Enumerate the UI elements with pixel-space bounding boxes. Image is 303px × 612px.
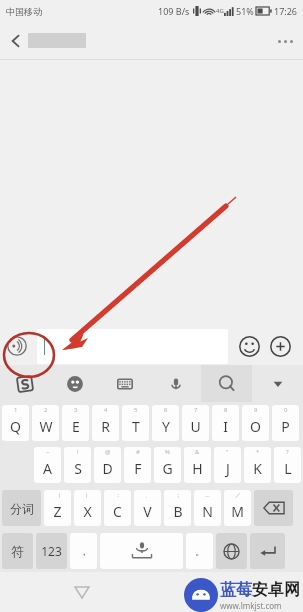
staticText: !: [77, 448, 79, 456]
button[interactable]: ，: [70, 533, 97, 569]
button[interactable]: %: [154, 447, 181, 483]
button[interactable]: [254, 490, 293, 526]
button[interactable]: [37, 329, 228, 364]
staticText: H: [192, 459, 203, 478]
button[interactable]: Emoji: [236, 333, 262, 359]
button[interactable]: 1: [2, 405, 29, 441]
staticText: F: [134, 459, 142, 478]
button[interactable]: Back: [0, 25, 32, 57]
staticText: 123: [41, 543, 62, 559]
staticText: K: [253, 459, 262, 478]
staticText: 分词: [10, 501, 34, 516]
staticText: 符: [11, 543, 24, 559]
staticText: W: [39, 417, 53, 436]
staticText: S: [74, 459, 82, 478]
button[interactable]: Hide keyboard: [70, 580, 94, 604]
staticText: ：: [115, 491, 121, 499]
button[interactable]: ／: [224, 490, 251, 526]
button[interactable]: *: [244, 447, 271, 483]
staticText: Y: [162, 417, 170, 436]
staticText: 中国移动: [6, 6, 42, 17]
button[interactable]: !: [64, 447, 91, 483]
button[interactable]: 7: [182, 405, 209, 441]
button[interactable]: 分词: [2, 490, 41, 526]
staticText: A: [43, 459, 52, 478]
button[interactable]: Sogou input: [0, 365, 50, 402]
staticText: #: [136, 448, 140, 456]
button[interactable]: Voice message: [4, 333, 30, 359]
staticText: R: [101, 417, 110, 436]
staticText: …: [205, 491, 210, 499]
staticText: 1: [14, 406, 18, 414]
button[interactable]: Search: [201, 365, 252, 402]
staticText: 4: [104, 406, 108, 414]
button[interactable]: 123: [36, 533, 67, 569]
button[interactable]: ；: [164, 490, 191, 526]
staticText: （: [55, 491, 61, 499]
button[interactable]: （: [44, 490, 71, 526]
button[interactable]: Voice input: [150, 365, 201, 402]
button[interactable]: 0: [272, 405, 299, 441]
button[interactable]: 8: [212, 405, 239, 441]
staticText: E: [72, 417, 80, 436]
button[interactable]: 6: [152, 405, 179, 441]
staticText: O: [250, 417, 261, 436]
button[interactable]: 、: [134, 490, 161, 526]
button[interactable]: @: [94, 447, 121, 483]
button[interactable]: ）: [74, 490, 101, 526]
button[interactable]: 5: [122, 405, 149, 441]
staticText: V: [143, 502, 152, 521]
button[interactable]: ?: [274, 447, 301, 483]
button[interactable]: 2: [32, 405, 59, 441]
staticText: 。: [195, 545, 205, 558]
staticText: 51%: [236, 5, 254, 17]
button[interactable]: &: [184, 447, 211, 483]
staticText: 3: [74, 406, 78, 414]
staticText: Z: [53, 502, 62, 521]
staticText: 17:26: [274, 5, 298, 17]
staticText: J: [226, 459, 230, 478]
staticText: I: [223, 417, 228, 436]
button[interactable]: ：: [104, 490, 131, 526]
button[interactable]: More options: [267, 23, 303, 59]
button[interactable]: #: [124, 447, 151, 483]
staticText: 9: [254, 406, 258, 414]
button[interactable]: Stickers: [50, 365, 100, 402]
staticText: 8: [224, 406, 228, 414]
staticText: 6: [164, 406, 168, 414]
button[interactable]: 3: [62, 405, 89, 441]
button[interactable]: [216, 533, 247, 569]
button[interactable]: 符: [2, 533, 33, 569]
staticText: %: [165, 448, 170, 456]
button[interactable]: [250, 533, 285, 569]
button[interactable]: ": [214, 447, 241, 483]
staticText: 安卓网: [252, 580, 300, 600]
staticText: 、: [145, 491, 151, 499]
staticText: N: [202, 502, 213, 521]
button[interactable]: 4: [92, 405, 119, 441]
staticText: X: [83, 502, 92, 521]
staticText: ／: [235, 491, 241, 499]
button[interactable]: 。: [186, 533, 213, 569]
button[interactable]: More functions: [266, 332, 294, 360]
staticText: www.lmkjst.com: [220, 600, 282, 611]
staticText: *: [256, 448, 260, 456]
staticText: D: [102, 459, 113, 478]
staticText: G: [162, 459, 173, 478]
button[interactable]: Collapse toolbar: [252, 365, 303, 402]
staticText: B: [173, 502, 183, 521]
staticText: 7: [194, 406, 198, 414]
staticText: 109 B/s: [158, 5, 190, 17]
staticText: ~: [46, 448, 50, 456]
staticText: ；: [175, 491, 181, 499]
staticText: ": [226, 448, 229, 456]
button[interactable]: …: [194, 490, 221, 526]
staticText: ）: [85, 491, 91, 499]
button[interactable]: Keyboard: [100, 365, 150, 402]
staticText: U: [190, 417, 201, 436]
button[interactable]: ~: [34, 447, 61, 483]
staticText: @: [105, 448, 111, 456]
button[interactable]: 9: [242, 405, 269, 441]
staticText: ，: [79, 545, 89, 558]
button[interactable]: [100, 533, 183, 569]
